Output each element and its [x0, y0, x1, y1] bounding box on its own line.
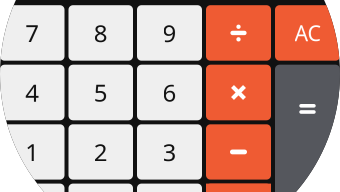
button[interactable]	[206, 65, 271, 120]
button[interactable]: 5	[68, 65, 133, 120]
button[interactable]: AC	[275, 5, 340, 61]
staticText: 7	[25, 17, 39, 49]
staticText: 2	[94, 136, 108, 168]
button[interactable]	[137, 184, 202, 192]
staticText: 4	[25, 77, 39, 108]
staticText: 6	[162, 77, 176, 108]
staticText: 3	[162, 136, 176, 168]
button[interactable]: 2	[68, 124, 133, 180]
button[interactable]: 0	[0, 184, 64, 192]
staticText: 9	[162, 17, 176, 49]
staticText: AC	[294, 19, 320, 47]
button[interactable]: 7	[0, 5, 64, 61]
button[interactable]: 1	[0, 124, 64, 180]
staticText: 5	[94, 77, 108, 108]
button[interactable]: 3	[137, 124, 202, 180]
button[interactable]: 6	[137, 65, 202, 120]
button[interactable]: 9	[137, 5, 202, 61]
button[interactable]: 8	[68, 5, 133, 61]
button[interactable]	[275, 65, 340, 192]
staticText: 8	[94, 17, 108, 49]
button[interactable]	[206, 5, 271, 61]
button[interactable]	[206, 124, 271, 180]
button[interactable]: 4	[0, 65, 64, 120]
staticText: 1	[25, 136, 39, 168]
button[interactable]: .	[68, 184, 133, 192]
